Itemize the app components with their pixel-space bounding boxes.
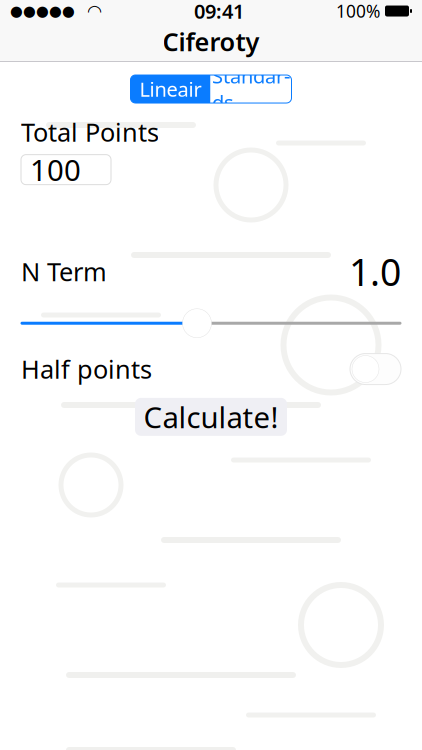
- staticText: Standards: [212, 62, 290, 115]
- staticText: Lineair: [139, 76, 201, 102]
- staticText: Half points: [21, 352, 152, 386]
- button[interactable]: Calculate!: [135, 398, 287, 436]
- staticText: 100%: [336, 0, 380, 22]
- staticText: ◠: [75, 1, 102, 21]
- button[interactable]: Half points: [350, 353, 401, 384]
- staticText: 1.0: [349, 247, 401, 296]
- staticText: 100: [30, 150, 81, 189]
- staticText: 09:41: [194, 0, 244, 24]
- button[interactable]: Lineair: [130, 75, 210, 103]
- staticText: N Term: [21, 255, 107, 288]
- staticText: ●●●●●: [10, 3, 75, 19]
- staticText: Calculate!: [143, 397, 278, 436]
- staticText: Total Points: [21, 115, 159, 149]
- button[interactable]: Standards: [210, 75, 291, 103]
- staticText: Ciferoty: [162, 25, 259, 58]
